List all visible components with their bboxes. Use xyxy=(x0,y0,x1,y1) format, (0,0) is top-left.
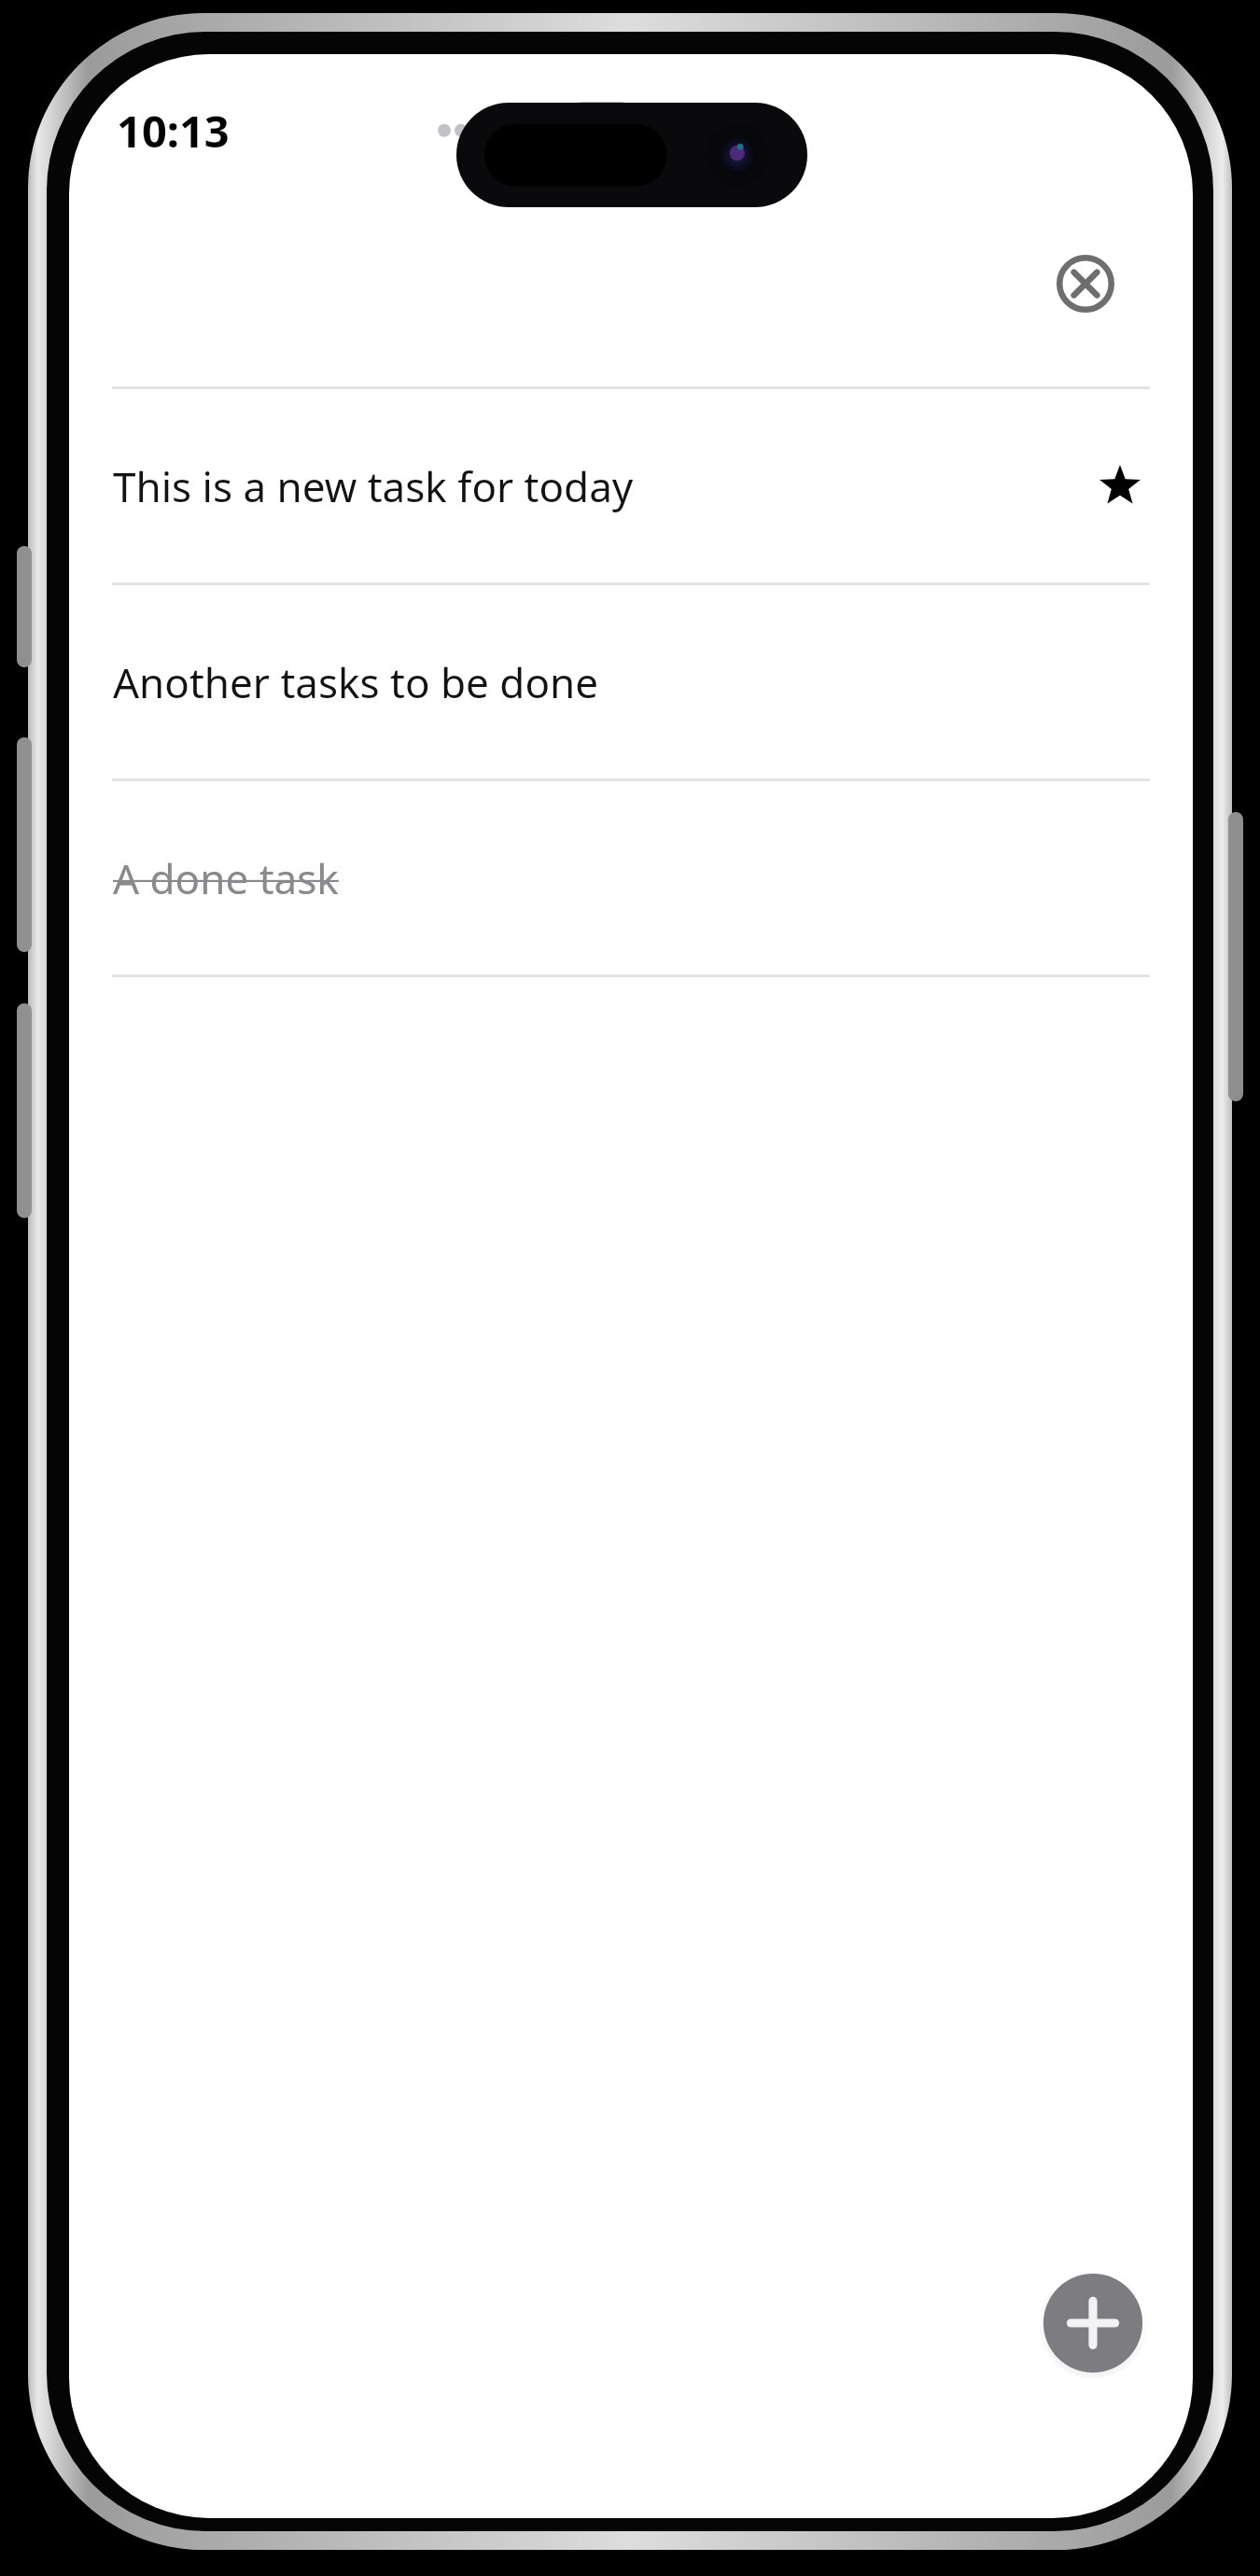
button[interactable]: A done task xyxy=(69,781,1193,974)
button[interactable]: Starred xyxy=(1091,457,1149,515)
staticText: A done task xyxy=(113,850,1091,906)
button[interactable]: Close xyxy=(1041,239,1130,329)
button[interactable]: Add task xyxy=(1038,2268,1148,2378)
staticText: This is a new task for today xyxy=(113,458,1091,514)
button[interactable]: This is a new task for today xyxy=(69,389,1193,582)
staticText: 10:13 xyxy=(117,101,230,161)
staticText: Another tasks to be done xyxy=(113,654,1091,710)
button[interactable]: Another tasks to be done xyxy=(69,585,1193,778)
